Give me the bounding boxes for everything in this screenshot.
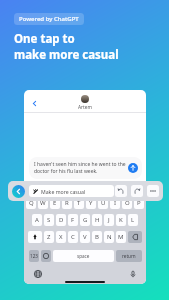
staticText: 123 (30, 253, 38, 259)
staticText: Make more casual (41, 188, 86, 195)
staticText: L (131, 216, 135, 224)
button[interactable]: U (98, 197, 108, 209)
button[interactable]: D (56, 214, 66, 226)
button[interactable]: O (122, 197, 132, 209)
staticText: A (35, 216, 39, 224)
staticText: Y (89, 199, 93, 207)
button[interactable]: Powered by ChatGPT (14, 13, 84, 25)
staticText: P (137, 199, 141, 207)
button[interactable]: T (74, 197, 84, 209)
button[interactable]: F (68, 214, 78, 226)
staticText: U (101, 199, 106, 207)
staticText: J (108, 216, 110, 224)
button[interactable]: P (134, 197, 144, 209)
staticText: C (71, 233, 75, 241)
staticText: B (95, 233, 99, 241)
button[interactable]: Shift (28, 231, 42, 243)
button[interactable]: Assist (12, 185, 25, 198)
button[interactable]: B (92, 231, 102, 243)
staticText: Q (29, 199, 34, 207)
staticText: M (118, 233, 124, 241)
button[interactable]: L (128, 214, 138, 226)
staticText: D (59, 216, 64, 224)
staticText: N (107, 233, 112, 241)
button[interactable]: 123 (29, 250, 39, 262)
staticText: Z (47, 233, 51, 241)
staticText: F (71, 216, 75, 224)
staticText: S (47, 216, 51, 224)
button[interactable]: W (38, 197, 48, 209)
button[interactable]: I haven't seen him since he went to the … (29, 157, 142, 179)
staticText: K (119, 216, 123, 224)
staticText: G (83, 216, 88, 224)
staticText: W (40, 199, 46, 207)
button[interactable]: K (116, 214, 126, 226)
staticText: Artem (78, 104, 92, 111)
button[interactable]: Make more casual (29, 185, 114, 197)
button[interactable]: I (110, 197, 120, 209)
staticText: I (114, 199, 117, 207)
staticText: space (77, 253, 90, 259)
button[interactable]: X (56, 231, 66, 243)
button[interactable]: More options (147, 185, 159, 197)
staticText: make more casual (14, 47, 119, 63)
staticText: T (77, 199, 81, 207)
staticText: V (83, 233, 87, 241)
button[interactable]: R (62, 197, 72, 209)
button[interactable]: Emoji (41, 250, 51, 262)
staticText: H (95, 216, 100, 224)
staticText: I haven't seen him since he went to the … (34, 161, 126, 174)
staticText: return (122, 253, 136, 259)
button[interactable]: E (50, 197, 60, 209)
button[interactable]: return (116, 250, 142, 262)
button[interactable]: Y (86, 197, 96, 209)
button[interactable]: J (104, 214, 114, 226)
button[interactable]: Redo (131, 185, 143, 197)
staticText: One tap to (14, 31, 75, 47)
button[interactable]: G (80, 214, 90, 226)
staticText: O (125, 199, 130, 207)
button[interactable]: space (53, 250, 114, 262)
button[interactable]: Back (29, 98, 40, 109)
staticText: Powered by ChatGPT (19, 15, 79, 23)
button[interactable]: N (104, 231, 114, 243)
button[interactable]: Z (44, 231, 54, 243)
button[interactable]: Backspace (128, 231, 142, 243)
button[interactable]: Language (32, 268, 43, 279)
button[interactable]: Undo (115, 185, 127, 197)
button[interactable]: M (116, 231, 126, 243)
button[interactable]: S (44, 214, 54, 226)
button[interactable]: Q (26, 197, 36, 209)
staticText: E (53, 199, 57, 207)
button[interactable]: C (68, 231, 78, 243)
button[interactable]: H (92, 214, 102, 226)
staticText: R (65, 199, 69, 207)
button[interactable]: Send (128, 163, 138, 173)
button[interactable]: V (80, 231, 90, 243)
button[interactable]: A (32, 214, 42, 226)
button[interactable]: Voice input (127, 268, 138, 279)
staticText: X (59, 233, 63, 241)
